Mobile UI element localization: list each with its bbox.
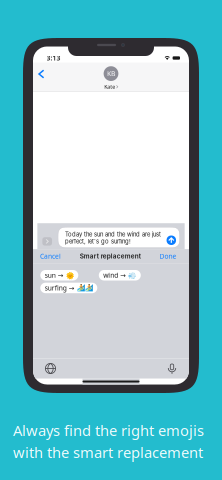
- button[interactable]: Dictate: [167, 363, 177, 374]
- button[interactable]: Change keyboard: [45, 363, 56, 374]
- button[interactable]: Expand: [42, 237, 52, 248]
- staticText: sun →: [45, 271, 64, 280]
- button[interactable]: Back: [33, 66, 50, 88]
- staticText: 🌞: [66, 271, 74, 279]
- button[interactable]: sun →: [40, 270, 78, 280]
- staticText: Today the sun and the wind are just perf…: [65, 231, 161, 245]
- staticText: Kate: [104, 83, 115, 90]
- staticText: Always find the right emojis: [13, 420, 204, 440]
- staticText: 3:13: [46, 54, 60, 62]
- button[interactable]: Cancel: [40, 252, 61, 261]
- staticText: 🏄🏄: [77, 284, 93, 292]
- staticText: 💨: [128, 271, 136, 279]
- staticText: surfing →: [45, 283, 75, 292]
- staticText: KB: [107, 69, 115, 78]
- staticText: Done: [159, 252, 176, 261]
- button[interactable]: wind →: [99, 270, 141, 280]
- staticText: Cancel: [40, 252, 61, 261]
- staticText: with the smart replacement: [13, 442, 203, 462]
- staticText: wind →: [103, 271, 126, 280]
- button[interactable]: Done: [159, 252, 176, 261]
- staticText: Smart replacement: [80, 252, 141, 260]
- button[interactable]: surfing →: [40, 283, 97, 293]
